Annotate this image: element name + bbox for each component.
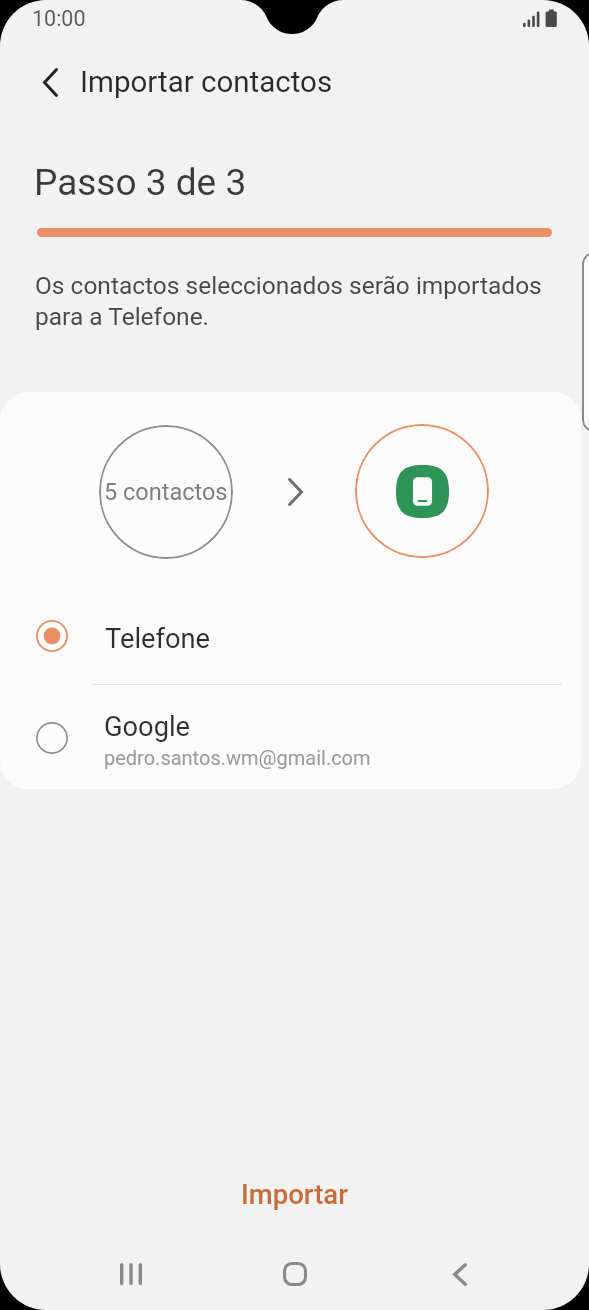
staticText: Importar xyxy=(241,1178,348,1210)
button[interactable]: Recents xyxy=(95,1238,167,1310)
button[interactable]: Back xyxy=(24,56,76,108)
staticText: Importar contactos xyxy=(80,65,333,100)
button[interactable]: Back xyxy=(424,1238,496,1310)
button[interactable]: Home xyxy=(259,1238,331,1310)
staticText: 5 contactos xyxy=(104,478,228,506)
button[interactable]: Google xyxy=(0,686,581,789)
staticText: 10:00 xyxy=(32,6,86,31)
staticText: Google xyxy=(104,711,191,743)
staticText: Passo 3 de 3 xyxy=(34,161,247,204)
button[interactable]: Importar xyxy=(0,1158,589,1230)
staticText: Os contactos seleccionados serão importa… xyxy=(35,271,555,331)
staticText: pedro.santos.wm@gmail.com xyxy=(104,746,371,769)
button[interactable]: Telefone xyxy=(0,592,581,680)
staticText: Telefone xyxy=(105,623,210,655)
